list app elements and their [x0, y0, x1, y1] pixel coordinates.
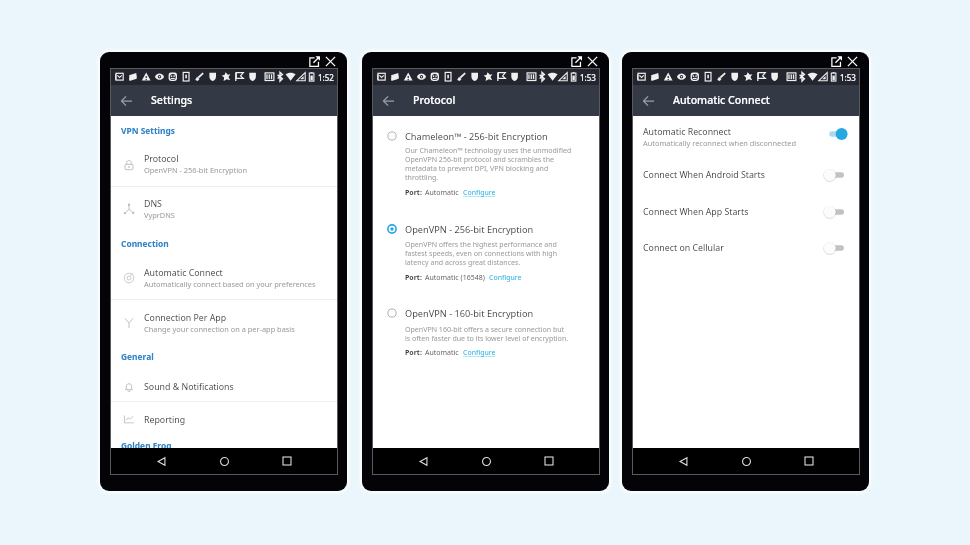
button[interactable]: Recents	[274, 448, 300, 474]
staticText: Port:	[405, 348, 422, 358]
staticText: Reporting	[144, 414, 186, 426]
staticText: Connection	[121, 238, 169, 249]
button[interactable]: Recents	[536, 448, 562, 474]
staticText: Connect When Android Starts	[643, 169, 765, 181]
staticText: VyprDNS	[144, 210, 175, 220]
button[interactable]: Open in new window	[568, 53, 584, 69]
staticText: Golden Frog	[121, 440, 172, 451]
button[interactable]: Configure	[489, 273, 522, 283]
button[interactable]: Configure	[463, 348, 496, 358]
staticText: General	[121, 351, 154, 362]
button[interactable]: DNS	[111, 188, 337, 230]
staticText: Our Chameleon™ technology uses the unmod…	[405, 145, 572, 182]
button[interactable]: Connect on Cellular	[633, 232, 859, 266]
button[interactable]: Connect When App Starts	[633, 194, 859, 231]
staticText: OpenVPN - 256-bit Encryption	[144, 165, 248, 175]
staticText: 1:53	[580, 72, 596, 83]
button[interactable]: Close	[584, 53, 600, 69]
staticText: Connect When App Starts	[643, 206, 749, 218]
button[interactable]: Sound & Notifications	[111, 373, 337, 401]
button[interactable]: Back	[670, 448, 696, 474]
button[interactable]: Back	[637, 90, 659, 112]
staticText: Protocol	[144, 153, 179, 165]
button[interactable]: Open in new window	[306, 53, 322, 69]
button[interactable]: Home	[211, 448, 237, 474]
staticText: Automatic	[425, 348, 459, 358]
staticText: Sound & Notifications	[144, 381, 234, 393]
button[interactable]: Recents	[796, 448, 822, 474]
staticText: Change your connection on a per-app basi…	[144, 324, 295, 334]
staticText: 1:53	[840, 72, 856, 83]
staticText: VPN Settings	[121, 125, 176, 136]
staticText: OpenVPN offers the highest performance a…	[405, 239, 557, 267]
staticText: Automatically reconnect when disconnecte…	[643, 138, 797, 148]
staticText: Port:	[405, 273, 422, 283]
button[interactable]: Connect When Android Starts	[633, 156, 859, 193]
staticText: OpenVPN - 160-bit Encryption	[405, 307, 534, 320]
staticText: Connection Per App	[144, 312, 227, 324]
button[interactable]: Close	[844, 53, 860, 69]
button[interactable]: Connection Per App	[111, 301, 337, 343]
button[interactable]: Chameleon™ - 256-bit Encryption	[373, 124, 599, 208]
button[interactable]: Automatic Reconnect	[633, 116, 859, 154]
button[interactable]: Reporting	[111, 402, 337, 433]
button[interactable]: Home	[733, 448, 759, 474]
staticText: 1:52	[318, 72, 334, 83]
button[interactable]: Protocol	[111, 144, 337, 186]
button[interactable]: Open in new window	[828, 53, 844, 69]
staticText: DNS	[144, 198, 162, 210]
staticText: Settings	[151, 93, 193, 107]
button[interactable]: Back	[377, 90, 399, 112]
button[interactable]: Configure	[463, 188, 496, 198]
button[interactable]: OpenVPN - 160-bit Encryption	[373, 297, 599, 364]
button[interactable]: Automatic Connect	[111, 258, 337, 299]
staticText: Automatic Connect	[144, 267, 223, 279]
staticText: OpenVPN 160-bit offers a secure connecti…	[405, 324, 569, 343]
staticText: Automatic	[425, 188, 459, 198]
button[interactable]: Home	[473, 448, 499, 474]
button[interactable]: Back	[410, 448, 436, 474]
button[interactable]: Back	[148, 448, 174, 474]
staticText: Port:	[405, 188, 422, 198]
staticText: Connect on Cellular	[643, 242, 724, 254]
staticText: Automatic (16548)	[425, 273, 485, 283]
staticText: Automatic Connect	[673, 93, 770, 107]
button[interactable]: Back	[115, 90, 137, 112]
button[interactable]: Close	[322, 53, 338, 69]
staticText: Automatically connect based on your pref…	[144, 279, 316, 289]
staticText: OpenVPN - 256-bit Encryption	[405, 223, 534, 236]
staticText: Chameleon™ - 256-bit Encryption	[405, 130, 548, 143]
staticText: Protocol	[413, 93, 456, 107]
staticText: Automatic Reconnect	[643, 126, 731, 138]
button[interactable]: OpenVPN - 256-bit Encryption	[373, 212, 599, 289]
